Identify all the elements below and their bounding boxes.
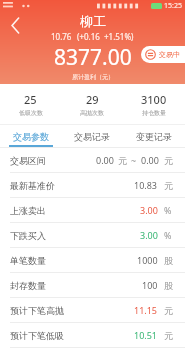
staticText: 元 (118, 155, 127, 166)
staticText: +1.51%) (104, 31, 134, 42)
staticText: % (164, 229, 172, 241)
staticText: 元 (164, 155, 173, 166)
staticText: 最新基准价 (10, 180, 55, 191)
staticText: 股 (164, 280, 173, 291)
button[interactable]: 预计下笔低吸 (0, 323, 185, 347)
button[interactable]: 变更记录 (123, 125, 185, 147)
staticText: 交易记录 (74, 131, 110, 142)
button[interactable]: 交易中 (141, 46, 185, 63)
button[interactable]: 上涨卖出 (0, 198, 185, 222)
staticText: 10.83 (134, 179, 158, 191)
staticText: 3.00 (140, 204, 158, 216)
staticText: 股 (164, 255, 173, 266)
staticText: 持仓数量 (142, 109, 166, 117)
staticText: 25 (24, 92, 37, 107)
button[interactable]: 25 (0, 92, 61, 117)
staticText: 3.00 (140, 229, 158, 241)
button[interactable]: Back (2, 12, 28, 38)
staticText: 3100 (141, 92, 167, 107)
button[interactable]: 预计下笔高抛 (0, 298, 185, 322)
staticText: 8377.00 (54, 43, 132, 72)
staticText: % (164, 204, 172, 216)
button[interactable]: 下跌买入 (0, 223, 185, 247)
staticText: 元 (164, 180, 173, 191)
staticText: 10.76 (51, 31, 72, 42)
staticText: 交易区间 (10, 155, 46, 166)
staticText: 交易参数 (13, 131, 49, 142)
staticText: 11.15 (134, 304, 158, 316)
staticText: 封存数量 (10, 280, 46, 291)
button[interactable]: 交易区间 (0, 148, 185, 172)
staticText: 100 (142, 279, 158, 291)
staticText: 交易中 (159, 50, 180, 59)
staticText: 上涨卖出 (10, 205, 46, 216)
staticText: 1000 (137, 254, 158, 266)
button[interactable]: 单笔数量 (0, 248, 185, 272)
button[interactable]: 交易参数 (0, 125, 61, 147)
staticText: 低吸次数 (19, 109, 43, 117)
staticText: 预计下笔高抛 (10, 305, 64, 316)
button[interactable]: 最新基准价 (0, 173, 185, 197)
staticText: ~ (131, 154, 137, 166)
staticText: 高抛次数 (80, 109, 104, 117)
staticText: 下跌买入 (10, 230, 46, 241)
button[interactable]: 3100 (123, 92, 185, 117)
button[interactable]: 封存数量 (0, 273, 185, 297)
staticText: 预计下笔低吸 (10, 330, 64, 341)
staticText: 15:25 (164, 1, 182, 11)
staticText: 变更记录 (136, 131, 172, 142)
staticText: 29 (86, 92, 99, 107)
staticText: 柳工 (80, 13, 106, 29)
staticText: 0.00 (141, 154, 159, 166)
staticText: (+0.16 (77, 31, 100, 42)
button[interactable]: 交易记录 (61, 125, 123, 147)
staticText: 单笔数量 (10, 255, 46, 266)
staticText: 元 (164, 305, 173, 316)
staticText: 0.00 (96, 154, 114, 166)
staticText: 元 (164, 330, 173, 341)
button[interactable]: 29 (61, 92, 123, 117)
staticText: 累计盈利（元） (72, 73, 114, 81)
staticText: 10.51 (134, 329, 158, 341)
